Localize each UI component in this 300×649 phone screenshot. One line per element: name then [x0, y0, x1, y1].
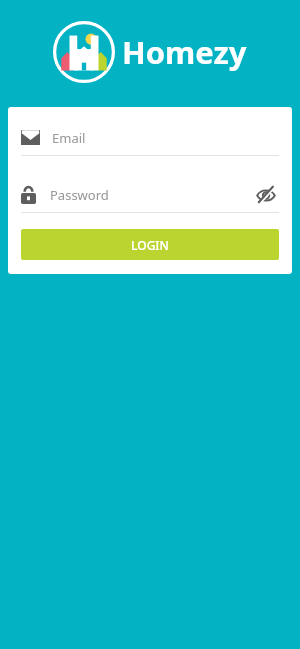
button[interactable]: Email	[21, 120, 279, 155]
staticText: LOGIN	[131, 237, 169, 253]
button[interactable]: LOGIN	[21, 229, 279, 260]
button[interactable]: Show password	[253, 182, 279, 208]
staticText: Email	[52, 129, 86, 147]
button[interactable]: Password	[21, 177, 279, 212]
staticText: Homezy	[122, 31, 247, 73]
staticText: Password	[50, 186, 109, 204]
